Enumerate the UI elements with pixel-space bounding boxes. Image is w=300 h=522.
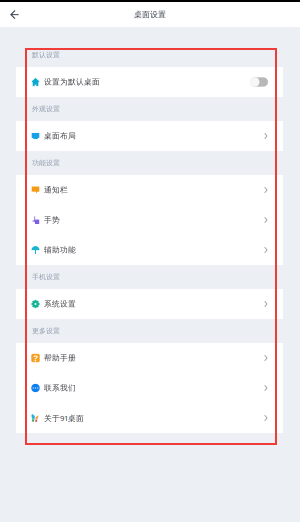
button[interactable]: 关于91桌面 bbox=[16, 403, 283, 433]
staticText: 通知栏 bbox=[44, 185, 68, 195]
staticText: 关于91桌面 bbox=[44, 413, 84, 423]
button[interactable]: ? bbox=[16, 343, 283, 373]
staticText: 更多设置 bbox=[32, 327, 60, 335]
staticText: 设置为默认桌面 bbox=[44, 77, 100, 87]
staticText: 默认设置 bbox=[32, 51, 60, 59]
staticText: 外观设置 bbox=[32, 105, 60, 113]
button[interactable]: 辅助功能 bbox=[16, 235, 283, 265]
staticText: 联系我们 bbox=[44, 383, 76, 393]
button[interactable]: 通知栏 bbox=[16, 175, 283, 205]
staticText: ? bbox=[33, 352, 37, 364]
staticText: 桌面布局 bbox=[44, 131, 76, 141]
button[interactable]: 联系我们 bbox=[16, 373, 283, 403]
staticText: 手机设置 bbox=[32, 273, 60, 281]
staticText: 系统设置 bbox=[44, 299, 76, 309]
staticText: 辅助功能 bbox=[44, 245, 76, 255]
button[interactable]: 设置为默认桌面 bbox=[16, 67, 283, 97]
button[interactable]: 系统设置 bbox=[16, 289, 283, 319]
button[interactable]: 桌面布局 bbox=[16, 121, 283, 151]
staticText: 桌面设置 bbox=[134, 9, 166, 20]
button[interactable]: Back bbox=[0, 2, 25, 27]
staticText: 手势 bbox=[44, 215, 60, 225]
button[interactable]: 手势 bbox=[16, 205, 283, 235]
staticText: 功能设置 bbox=[32, 159, 60, 167]
staticText: 帮助手册 bbox=[44, 353, 76, 363]
